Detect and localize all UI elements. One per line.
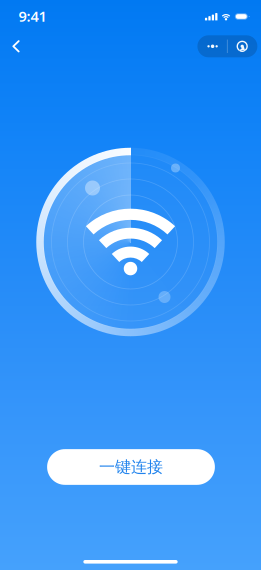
staticText: 9:41 bbox=[18, 6, 46, 26]
staticText: 一键连接 bbox=[99, 457, 163, 477]
button[interactable]: More bbox=[198, 35, 228, 57]
button[interactable]: 一键连接 bbox=[47, 449, 215, 485]
button[interactable]: Close mini program bbox=[228, 35, 257, 57]
button[interactable]: Back bbox=[1, 31, 31, 61]
